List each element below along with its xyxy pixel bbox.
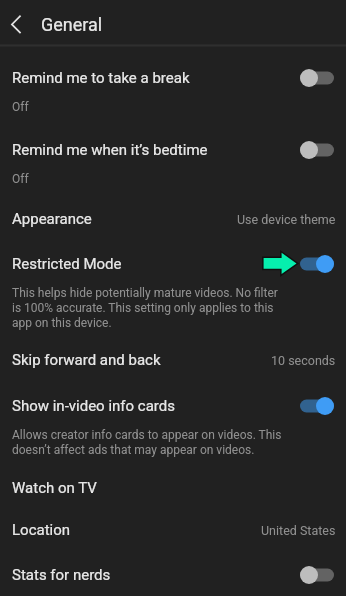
staticText: Location — [12, 521, 71, 539]
button[interactable]: Stats for nerds, off — [300, 565, 334, 585]
button[interactable]: Restricted Mode — [0, 233, 346, 329]
staticText: Show in-video info cards — [12, 397, 175, 415]
staticText: 10 seconds — [271, 353, 336, 368]
staticText: United States — [261, 523, 336, 538]
staticText: Remind me when it’s bedtime — [12, 141, 208, 159]
staticText: This helps hide potentially mature video… — [12, 286, 286, 329]
button[interactable]: Skip forward and back — [0, 329, 346, 375]
staticText: Off — [12, 172, 29, 186]
staticText: Off — [12, 100, 29, 114]
staticText: Skip forward and back — [12, 351, 161, 369]
staticText: Remind me to take a break — [12, 69, 190, 87]
button[interactable]: Show in-video info cards — [0, 375, 346, 457]
staticText: Watch on TV — [12, 479, 97, 497]
staticText: Restricted Mode — [12, 255, 122, 273]
button[interactable]: Remind me to take a break, off — [300, 68, 334, 88]
button[interactable]: Remind me to take a break — [0, 47, 346, 119]
staticText: Appearance — [12, 210, 92, 228]
staticText: General — [41, 14, 103, 35]
button[interactable]: Location — [0, 499, 346, 544]
staticText: Stats for nerds — [12, 566, 111, 584]
button[interactable]: Stats for nerds — [0, 544, 346, 596]
button[interactable]: Remind me when it’s bedtime — [0, 119, 346, 188]
staticText: Use device theme — [237, 212, 336, 227]
button[interactable]: Appearance — [0, 188, 346, 233]
button[interactable]: Restricted Mode, on — [300, 254, 334, 274]
staticText: Allows creator info cards to appear on v… — [12, 428, 286, 456]
button[interactable]: Watch on TV — [0, 457, 346, 499]
button[interactable]: Back — [0, 8, 32, 40]
button[interactable]: Remind me when it’s bedtime, off — [300, 140, 334, 160]
button[interactable]: Show in-video info cards, on — [300, 396, 334, 416]
